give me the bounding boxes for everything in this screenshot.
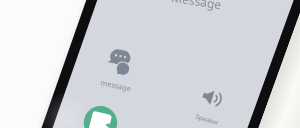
button[interactable]: In call screen — [0, 0, 300, 128]
